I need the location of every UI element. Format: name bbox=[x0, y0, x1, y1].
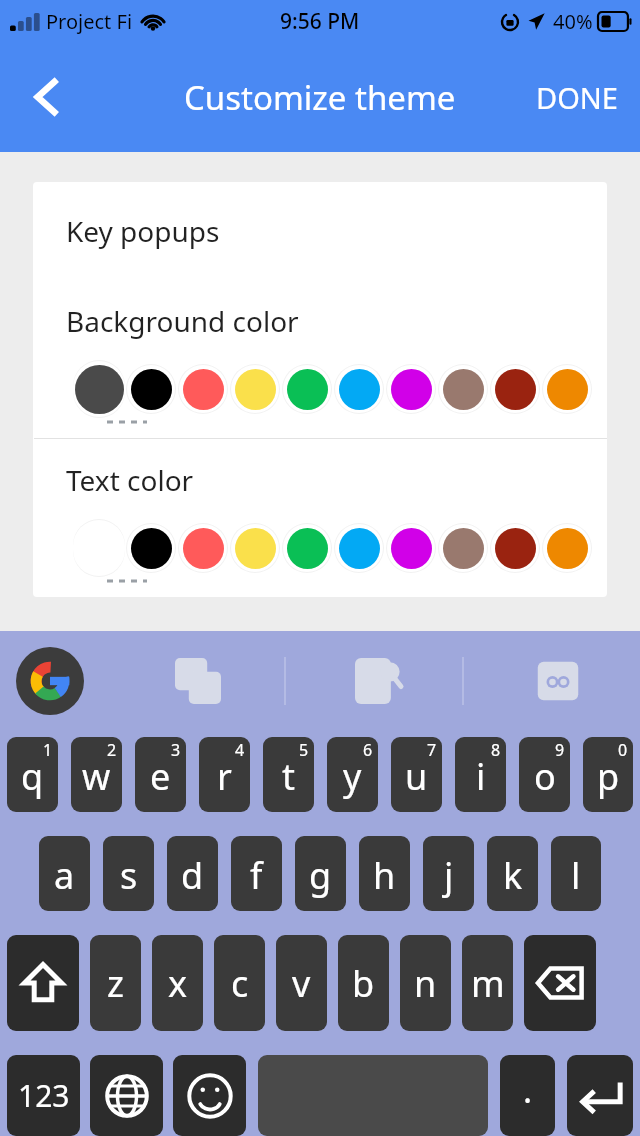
staticText: r bbox=[217, 752, 232, 801]
button[interactable]: Color 7 bbox=[437, 358, 489, 420]
staticText: h bbox=[373, 851, 396, 900]
button[interactable]: b bbox=[338, 935, 389, 1031]
button[interactable]: Color 5 bbox=[333, 358, 385, 420]
staticText: s bbox=[120, 851, 138, 900]
button[interactable]: i bbox=[455, 737, 506, 812]
button[interactable]: Color 9 bbox=[541, 517, 593, 579]
staticText: w bbox=[82, 752, 111, 801]
button[interactable]: l bbox=[551, 836, 601, 911]
button[interactable]: u bbox=[391, 737, 442, 812]
button[interactable]: Color 2 bbox=[177, 358, 229, 420]
button[interactable]: t bbox=[263, 737, 314, 812]
staticText: 9 bbox=[555, 739, 565, 761]
button[interactable]: Color 8 bbox=[489, 517, 541, 579]
staticText: 2 bbox=[107, 739, 117, 761]
button[interactable]: v bbox=[276, 935, 327, 1031]
button[interactable]: 123 bbox=[7, 1055, 80, 1136]
staticText: n bbox=[414, 959, 437, 1008]
staticText: Customize theme bbox=[184, 75, 456, 120]
button[interactable]: f bbox=[231, 836, 282, 911]
button[interactable]: Enter bbox=[567, 1055, 633, 1136]
button[interactable]: r bbox=[199, 737, 250, 812]
staticText: DONE bbox=[536, 78, 618, 117]
staticText: d bbox=[181, 851, 204, 900]
staticText: 40% bbox=[553, 8, 593, 35]
button[interactable]: . bbox=[500, 1055, 555, 1136]
button[interactable]: Emoji bbox=[173, 1055, 246, 1136]
button[interactable]: n bbox=[400, 935, 451, 1031]
staticText: x bbox=[168, 959, 188, 1008]
button[interactable]: Google bbox=[16, 647, 84, 715]
button[interactable]: DONE bbox=[528, 70, 626, 125]
button[interactable]: Color 2 bbox=[177, 517, 229, 579]
staticText: 5 bbox=[299, 739, 309, 761]
button[interactable]: Change language bbox=[90, 1055, 163, 1136]
staticText: g bbox=[309, 851, 332, 900]
button[interactable]: Color 1 bbox=[125, 517, 177, 579]
staticText: i bbox=[476, 752, 486, 801]
button[interactable]: j bbox=[423, 836, 474, 911]
button[interactable]: Color 5 bbox=[333, 517, 385, 579]
button[interactable]: Color 6 bbox=[385, 358, 437, 420]
button[interactable]: GIF bbox=[528, 651, 588, 711]
button[interactable]: Color 1 bbox=[125, 358, 177, 420]
staticText: k bbox=[503, 851, 523, 900]
staticText: 6 bbox=[363, 739, 373, 761]
button[interactable]: k bbox=[487, 836, 538, 911]
staticText: Project Fi bbox=[46, 8, 133, 35]
button[interactable]: g bbox=[295, 836, 346, 911]
button[interactable]: Color 6 bbox=[385, 517, 437, 579]
staticText: p bbox=[597, 752, 620, 801]
staticText: v bbox=[292, 959, 311, 1008]
staticText: 123 bbox=[18, 1075, 70, 1116]
staticText: . bbox=[523, 1067, 533, 1113]
staticText: 1 bbox=[43, 739, 53, 761]
button[interactable]: o bbox=[519, 737, 570, 812]
staticText: 9:56 PM bbox=[280, 7, 360, 36]
button[interactable]: Color 9 bbox=[541, 358, 593, 420]
button[interactable]: y bbox=[327, 737, 378, 812]
button[interactable]: p bbox=[583, 737, 633, 812]
button[interactable]: Color 7 bbox=[437, 517, 489, 579]
button[interactable]: c bbox=[214, 935, 265, 1031]
button[interactable]: Color 3 bbox=[229, 517, 281, 579]
button[interactable]: Color 0 bbox=[73, 358, 125, 420]
staticText: z bbox=[107, 959, 124, 1008]
button[interactable]: w bbox=[71, 737, 122, 812]
staticText: 0 bbox=[618, 739, 628, 761]
button[interactable]: s bbox=[103, 836, 154, 911]
button[interactable]: Shift bbox=[7, 935, 79, 1031]
button[interactable]: d bbox=[167, 836, 218, 911]
button[interactable]: x bbox=[152, 935, 203, 1031]
staticText: l bbox=[571, 851, 581, 900]
button[interactable]: Search stickers bbox=[348, 651, 408, 711]
staticText: u bbox=[405, 752, 428, 801]
staticText: Background color bbox=[66, 302, 299, 340]
staticText: 7 bbox=[427, 739, 437, 761]
staticText: t bbox=[282, 752, 295, 801]
button[interactable]: Color 4 bbox=[281, 358, 333, 420]
button[interactable]: h bbox=[359, 836, 410, 911]
button[interactable]: q bbox=[7, 737, 58, 812]
staticText: 4 bbox=[235, 739, 245, 761]
button[interactable]: Color 4 bbox=[281, 517, 333, 579]
button[interactable]: e bbox=[135, 737, 186, 812]
button[interactable]: Space bbox=[258, 1055, 488, 1136]
staticText: e bbox=[150, 752, 171, 801]
staticText: f bbox=[250, 851, 263, 900]
button[interactable]: a bbox=[39, 836, 90, 911]
staticText: j bbox=[444, 851, 454, 900]
staticText: Key popups bbox=[66, 212, 220, 250]
button[interactable]: Color 3 bbox=[229, 358, 281, 420]
staticText: o bbox=[534, 752, 556, 801]
button[interactable]: z bbox=[90, 935, 141, 1031]
staticText: 8 bbox=[491, 739, 501, 761]
button[interactable]: Backspace bbox=[524, 935, 596, 1031]
button[interactable]: Translate bbox=[168, 651, 228, 711]
staticText: 3 bbox=[171, 739, 181, 761]
staticText: c bbox=[231, 959, 249, 1008]
button[interactable]: Color 8 bbox=[489, 358, 541, 420]
button[interactable]: m bbox=[462, 935, 513, 1031]
button[interactable]: Back bbox=[18, 69, 74, 125]
